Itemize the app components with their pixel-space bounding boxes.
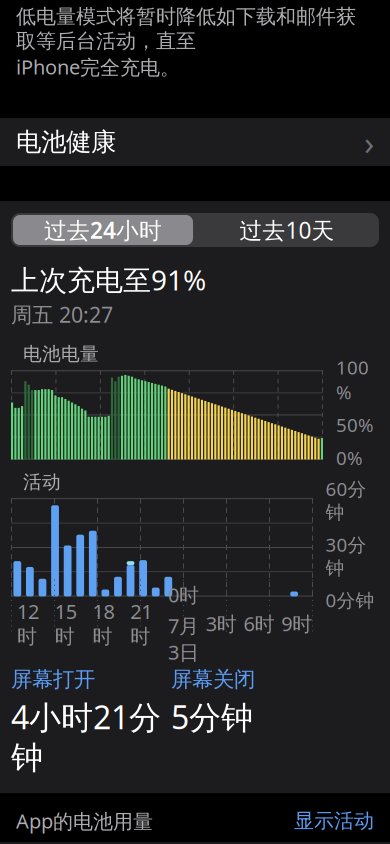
staticText: iPhone完全充电。 (16, 53, 180, 80)
staticText: 4小时21分钟 (11, 696, 161, 777)
staticText: 100% (336, 355, 369, 404)
staticText: 显示活动 (294, 808, 374, 833)
staticText: 过去10天 (239, 215, 334, 245)
staticText: 上次充电至91% (11, 261, 206, 298)
staticText: 15时 (55, 598, 77, 649)
staticText: 电池电量 (23, 342, 99, 365)
staticText: › (364, 120, 374, 164)
staticText: 18时 (92, 598, 114, 649)
button[interactable]: 过去24小时 (11, 213, 195, 247)
staticText: 低电量模式将暂时降低如下载和邮件获取等后台活动，直至 (16, 4, 356, 53)
staticText: 6时 (243, 610, 274, 637)
staticText: 60分钟 (325, 476, 366, 524)
staticText: 0分钟 (325, 588, 374, 612)
staticText: 0时 (168, 582, 199, 608)
staticText: 5分钟 (171, 696, 253, 738)
staticText: 30分钟 (325, 532, 366, 580)
staticText: 7月3日 (168, 612, 199, 665)
staticText: 过去24小时 (44, 215, 162, 245)
button[interactable]: 过去10天 (195, 213, 379, 247)
staticText: 3时 (206, 610, 237, 637)
staticText: 电池健康 (16, 126, 116, 158)
button[interactable]: 电池健康 (0, 118, 390, 166)
staticText: 0% (336, 445, 363, 470)
staticText: 活动 (23, 470, 61, 493)
staticText: 12时 (17, 598, 39, 649)
staticText: 50% (336, 412, 374, 437)
button[interactable]: 显示活动 (294, 808, 374, 833)
staticText: App的电池用量 (16, 807, 153, 834)
staticText: 屏幕关闭 (171, 666, 255, 693)
staticText: 9时 (281, 610, 312, 637)
staticText: 周五 20:27 (11, 300, 113, 328)
staticText: 21时 (130, 598, 152, 649)
staticText: 屏幕打开 (11, 666, 95, 693)
